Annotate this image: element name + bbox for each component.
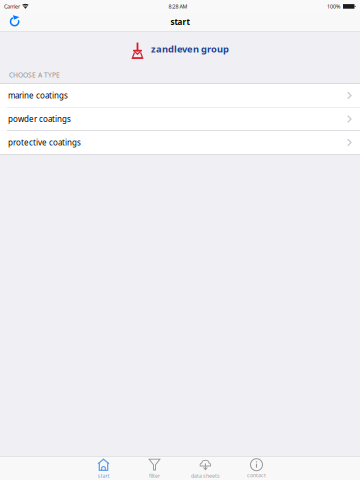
staticText: 8:28 AM <box>168 3 187 10</box>
staticText: 100% <box>327 3 340 10</box>
staticText: filter <box>149 472 160 479</box>
staticText: protective coatings <box>8 137 81 148</box>
staticText: marine coatings <box>8 90 68 101</box>
button[interactable]: protective coatings <box>0 131 360 154</box>
button[interactable]: marine coatings <box>0 84 360 107</box>
button[interactable]: data sheets <box>180 455 231 480</box>
staticText: zandleven group <box>151 43 229 55</box>
staticText: powder coatings <box>8 114 71 124</box>
staticText: start <box>170 17 189 27</box>
button[interactable]: start <box>78 455 129 480</box>
button[interactable]: contact <box>231 456 282 480</box>
button[interactable]: filter <box>129 455 180 480</box>
staticText: CHOOSE A TYPE <box>9 71 60 79</box>
staticText: data sheets <box>191 472 220 479</box>
button[interactable]: powder coatings <box>0 107 360 130</box>
staticText: start <box>97 472 109 479</box>
button[interactable]: Refresh <box>0 14 28 30</box>
staticText: Carrier <box>4 3 20 10</box>
staticText: contact <box>247 472 266 479</box>
